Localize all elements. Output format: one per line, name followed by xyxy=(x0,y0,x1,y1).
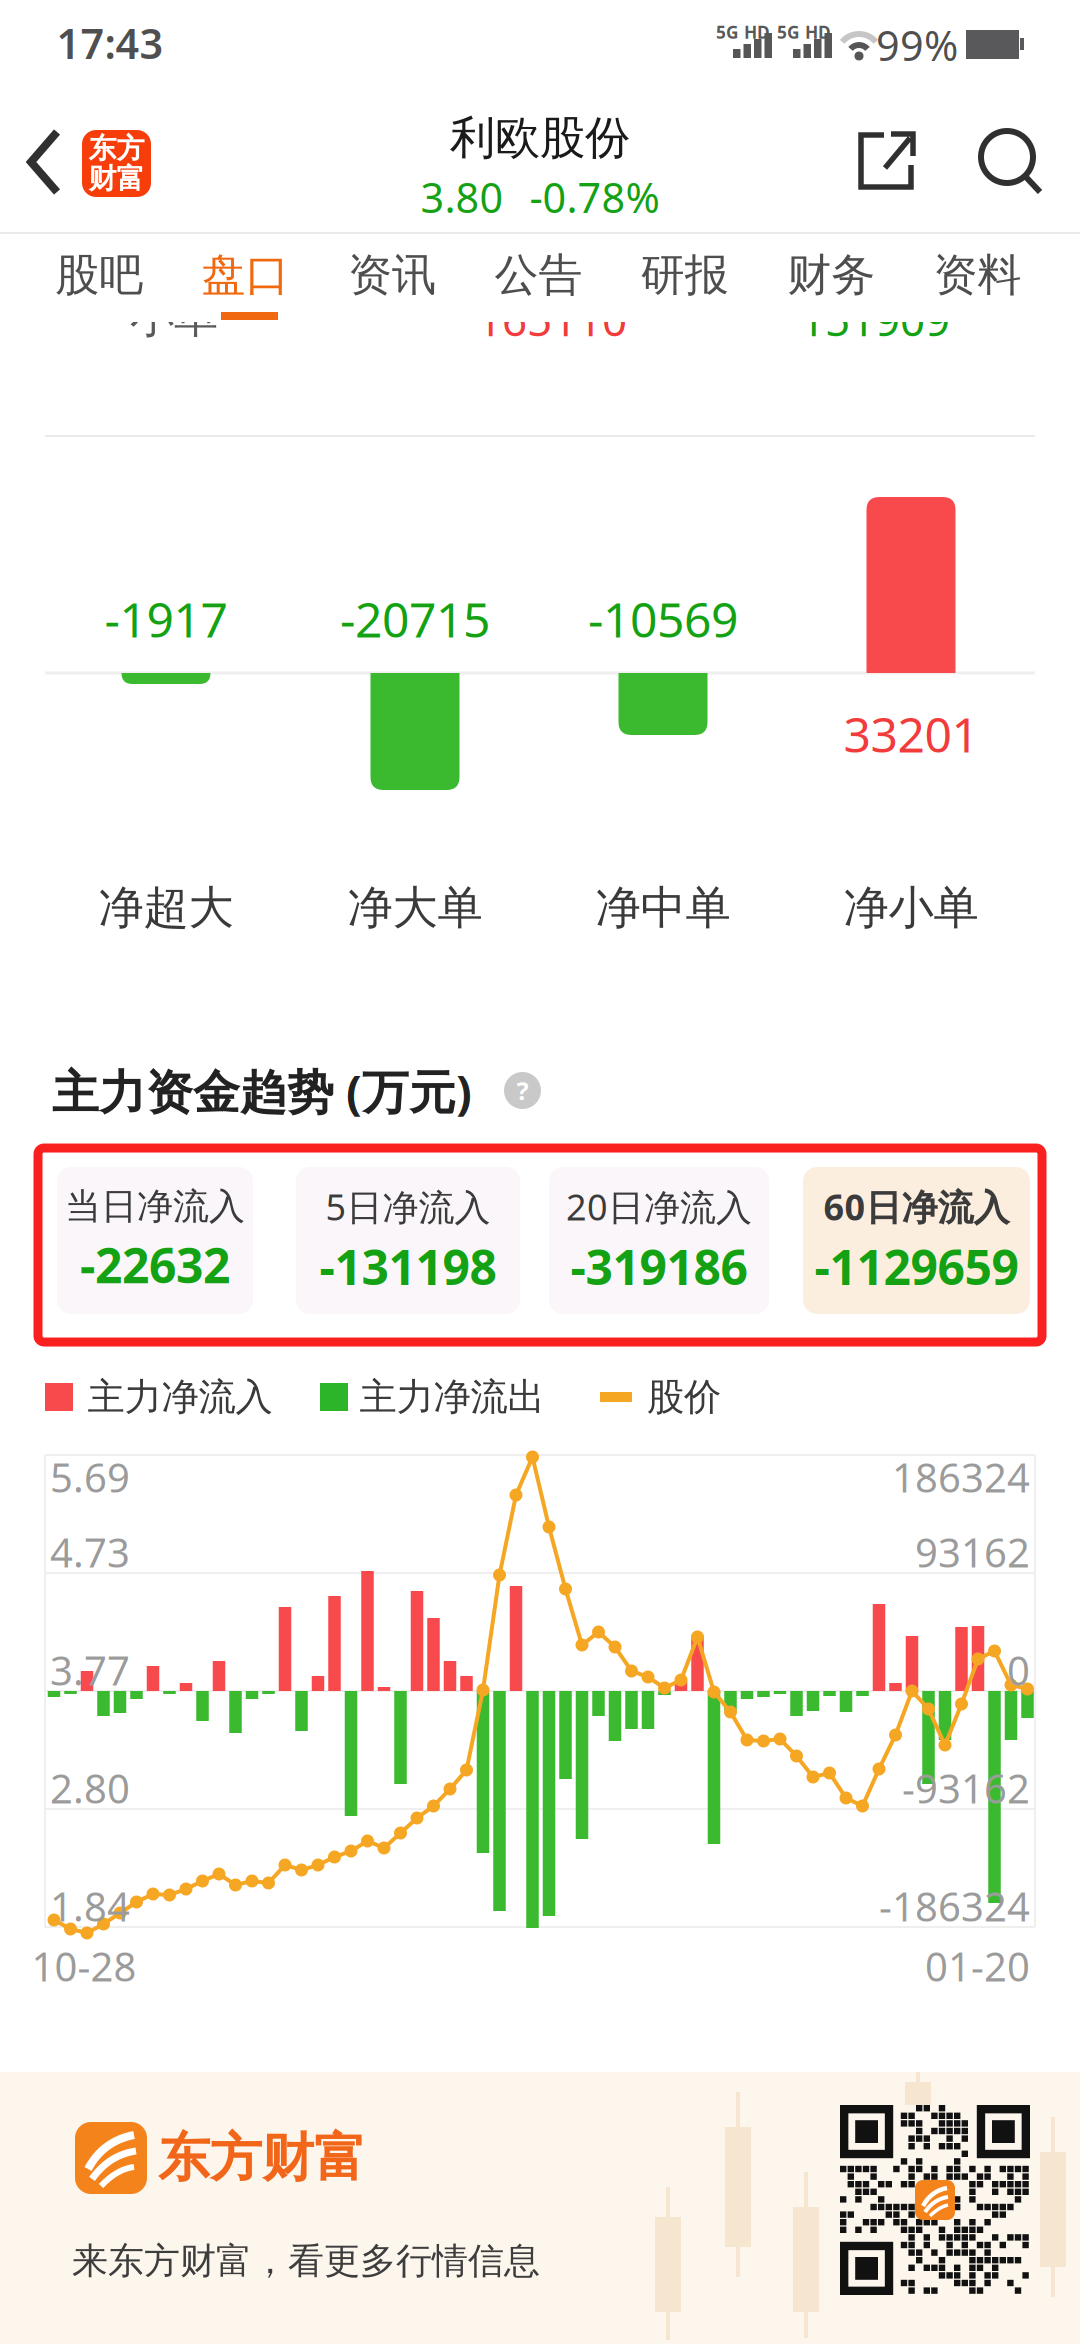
button[interactable]: 帮助 xyxy=(504,1072,541,1109)
staticText: -131198 xyxy=(319,1234,496,1298)
staticText: 01-20 xyxy=(925,1939,1030,1992)
staticText: -1917 xyxy=(104,587,227,651)
staticText: 4.73 xyxy=(50,1525,130,1578)
button[interactable]: Back xyxy=(27,128,63,196)
staticText: 0 xyxy=(1007,1643,1030,1696)
staticText: 33201 xyxy=(843,702,978,766)
staticText: 3.77 xyxy=(50,1643,130,1696)
button[interactable]: 东方财富 xyxy=(82,130,151,197)
staticText: 186324 xyxy=(892,1450,1030,1503)
staticText: 1.84 xyxy=(50,1879,130,1932)
button[interactable]: 公告 xyxy=(465,232,612,318)
staticText: -22632 xyxy=(80,1233,230,1296)
staticText: 5G HD xyxy=(777,20,831,43)
staticText: 净小单 xyxy=(843,880,978,936)
staticText: 93162 xyxy=(915,1525,1030,1578)
staticText: -10569 xyxy=(588,587,738,651)
staticText: 165110 xyxy=(477,290,627,348)
staticText: -186324 xyxy=(879,1879,1030,1932)
button[interactable]: Share xyxy=(858,132,916,190)
staticText: 来东方财富，看更多行情信息 xyxy=(72,2239,540,2283)
staticText: 5日净流入 xyxy=(325,1183,490,1230)
button[interactable]: 股吧 xyxy=(26,232,172,318)
button[interactable]: 20日净流入 xyxy=(549,1167,769,1314)
button[interactable]: 当日净流入 xyxy=(57,1167,253,1314)
staticText: -1129659 xyxy=(814,1234,1018,1298)
staticText: -93162 xyxy=(902,1761,1030,1814)
staticText: 主力资金趋势 (万元) xyxy=(52,1060,472,1122)
staticText: 5.69 xyxy=(50,1450,130,1503)
staticText: 3.80 xyxy=(420,170,503,224)
staticText: 20日净流入 xyxy=(566,1183,752,1230)
button[interactable]: 来东方财富，看更多行情信息 xyxy=(0,2072,1080,2344)
button[interactable]: 财务 xyxy=(758,232,904,318)
staticText: 东方 xyxy=(88,131,144,165)
staticText: 净中单 xyxy=(595,880,730,936)
staticText: -319186 xyxy=(570,1234,747,1298)
staticText: -0.78% xyxy=(529,170,659,224)
staticText: 财富 xyxy=(88,161,144,196)
staticText: 151909 xyxy=(800,290,950,348)
staticText: ? xyxy=(516,1074,528,1107)
staticText: 公告 xyxy=(494,248,582,302)
staticText: 净超大 xyxy=(98,880,233,936)
staticText: 当日净流入 xyxy=(65,1184,245,1229)
staticText: 财务 xyxy=(787,248,875,302)
staticText: 净大单 xyxy=(347,880,482,936)
staticText: 5G HD xyxy=(716,20,770,43)
button[interactable]: 5日净流入 xyxy=(296,1167,520,1314)
staticText: 利欧股份 xyxy=(450,110,630,166)
staticText: 小单 xyxy=(130,290,218,344)
staticText: 股吧 xyxy=(55,248,143,302)
staticText: -20715 xyxy=(340,587,490,651)
staticText: 股价 xyxy=(647,1374,721,1420)
staticText: 60日净流入 xyxy=(823,1183,1009,1230)
button[interactable]: 资料 xyxy=(904,232,1051,318)
staticText: 资讯 xyxy=(348,248,436,302)
button[interactable]: 资讯 xyxy=(319,232,465,318)
staticText: 99% xyxy=(876,18,958,72)
staticText: 研报 xyxy=(641,248,729,302)
button[interactable]: 研报 xyxy=(612,232,758,318)
button[interactable]: 盘口 xyxy=(172,232,319,318)
staticText: 主力净流出 xyxy=(359,1374,544,1420)
staticText: 盘口 xyxy=(202,248,290,302)
staticText: 主力净流入 xyxy=(87,1374,272,1420)
button[interactable]: 60日净流入 xyxy=(803,1167,1030,1314)
staticText: 10-28 xyxy=(31,1939,136,1992)
staticText: 资料 xyxy=(934,248,1022,302)
button[interactable]: Search xyxy=(978,128,1044,196)
staticText: 2.80 xyxy=(50,1761,130,1814)
staticText: 东方财富 xyxy=(158,2126,366,2190)
staticText: 17:43 xyxy=(56,16,163,70)
